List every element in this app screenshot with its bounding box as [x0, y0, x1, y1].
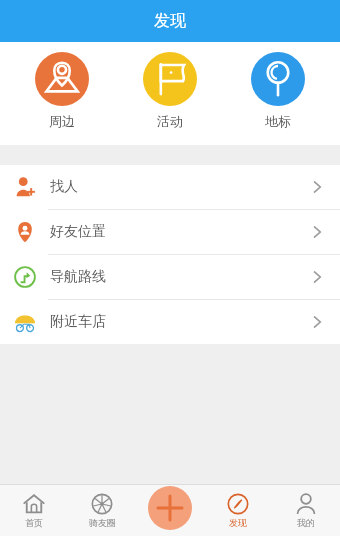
staticText: 附近车店: [50, 313, 106, 331]
button[interactable]: 附近车店: [0, 300, 340, 344]
button[interactable]: 好友位置: [0, 210, 340, 254]
staticText: 地标: [265, 113, 291, 129]
staticText: 周边: [49, 113, 75, 129]
button[interactable]: 导航路线: [0, 255, 340, 299]
staticText: 我的: [297, 517, 315, 528]
button[interactable]: 地标: [232, 42, 324, 129]
button[interactable]: 活动: [124, 42, 216, 129]
button[interactable]: 我的: [272, 484, 340, 536]
staticText: 发现: [154, 11, 186, 31]
staticText: 首页: [25, 517, 43, 528]
staticText: 发现: [229, 517, 247, 528]
button[interactable]: Add: [148, 486, 192, 530]
button[interactable]: 找人: [0, 165, 340, 209]
button[interactable]: 首页: [0, 484, 68, 536]
staticText: 骑友圈: [89, 517, 116, 528]
button[interactable]: 骑友圈: [68, 484, 136, 536]
staticText: 活动: [157, 113, 183, 129]
staticText: 导航路线: [50, 268, 106, 286]
button[interactable]: 发现: [204, 484, 272, 536]
staticText: 好友位置: [50, 223, 106, 241]
staticText: 找人: [50, 178, 78, 196]
button[interactable]: 周边: [16, 42, 108, 129]
